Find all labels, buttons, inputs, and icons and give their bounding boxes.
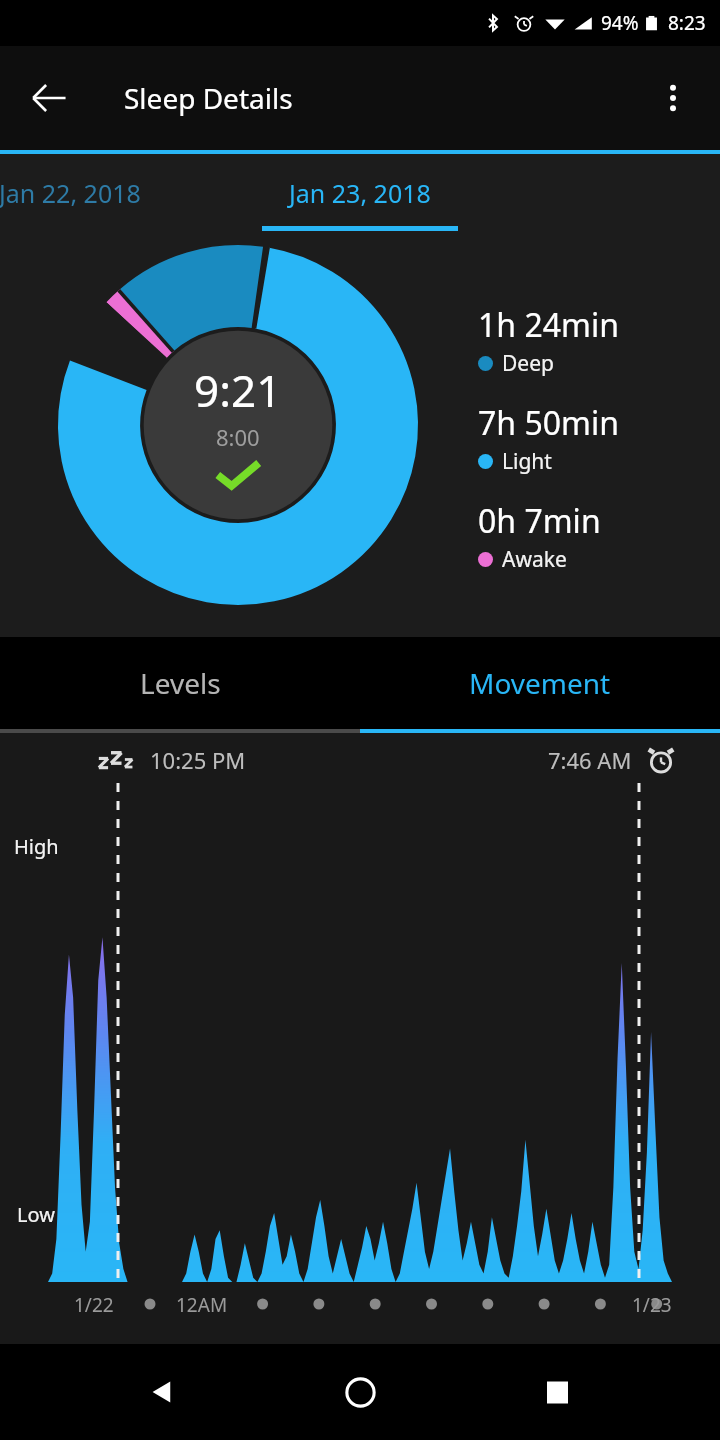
button[interactable]: Recents bbox=[524, 1359, 590, 1425]
staticText: Deep bbox=[502, 349, 554, 378]
staticText: Jan 23, 2018 bbox=[289, 176, 431, 210]
button[interactable]: Levels bbox=[0, 637, 360, 729]
button[interactable]: Home bbox=[327, 1359, 393, 1425]
button[interactable]: Jan 23, 2018 bbox=[220, 154, 500, 231]
staticText: 9:21 bbox=[194, 360, 282, 420]
staticText: Awake bbox=[502, 545, 567, 574]
staticText: 0h 7min bbox=[478, 499, 601, 543]
staticText: 1/22 bbox=[74, 1292, 114, 1318]
staticText: 1/23 bbox=[632, 1292, 672, 1318]
staticText: 94% bbox=[601, 10, 639, 36]
button[interactable]: Jan 22, 2018 bbox=[0, 154, 210, 231]
staticText: Jan 22, 2018 bbox=[0, 176, 141, 210]
staticText: Levels bbox=[140, 664, 221, 702]
staticText: Light bbox=[502, 447, 552, 476]
staticText: 7h 50min bbox=[478, 401, 619, 445]
button[interactable]: Back bbox=[130, 1359, 196, 1425]
button[interactable]: More options bbox=[642, 67, 704, 129]
staticText: Movement bbox=[469, 664, 611, 702]
staticText: High bbox=[14, 833, 59, 860]
button[interactable]: Movement bbox=[360, 637, 720, 729]
staticText: 12AM bbox=[176, 1292, 228, 1318]
staticText: 8:23 bbox=[668, 10, 706, 36]
staticText: 8:00 bbox=[216, 422, 260, 452]
staticText: 1h 24min bbox=[478, 303, 619, 347]
staticText: Low bbox=[17, 1201, 55, 1228]
staticText: Sleep Details bbox=[124, 79, 293, 117]
other: Alarm bbox=[646, 745, 676, 775]
staticText: 7:46 AM bbox=[548, 745, 632, 775]
button[interactable]: Back bbox=[18, 67, 80, 129]
staticText: 10:25 PM bbox=[150, 745, 246, 775]
